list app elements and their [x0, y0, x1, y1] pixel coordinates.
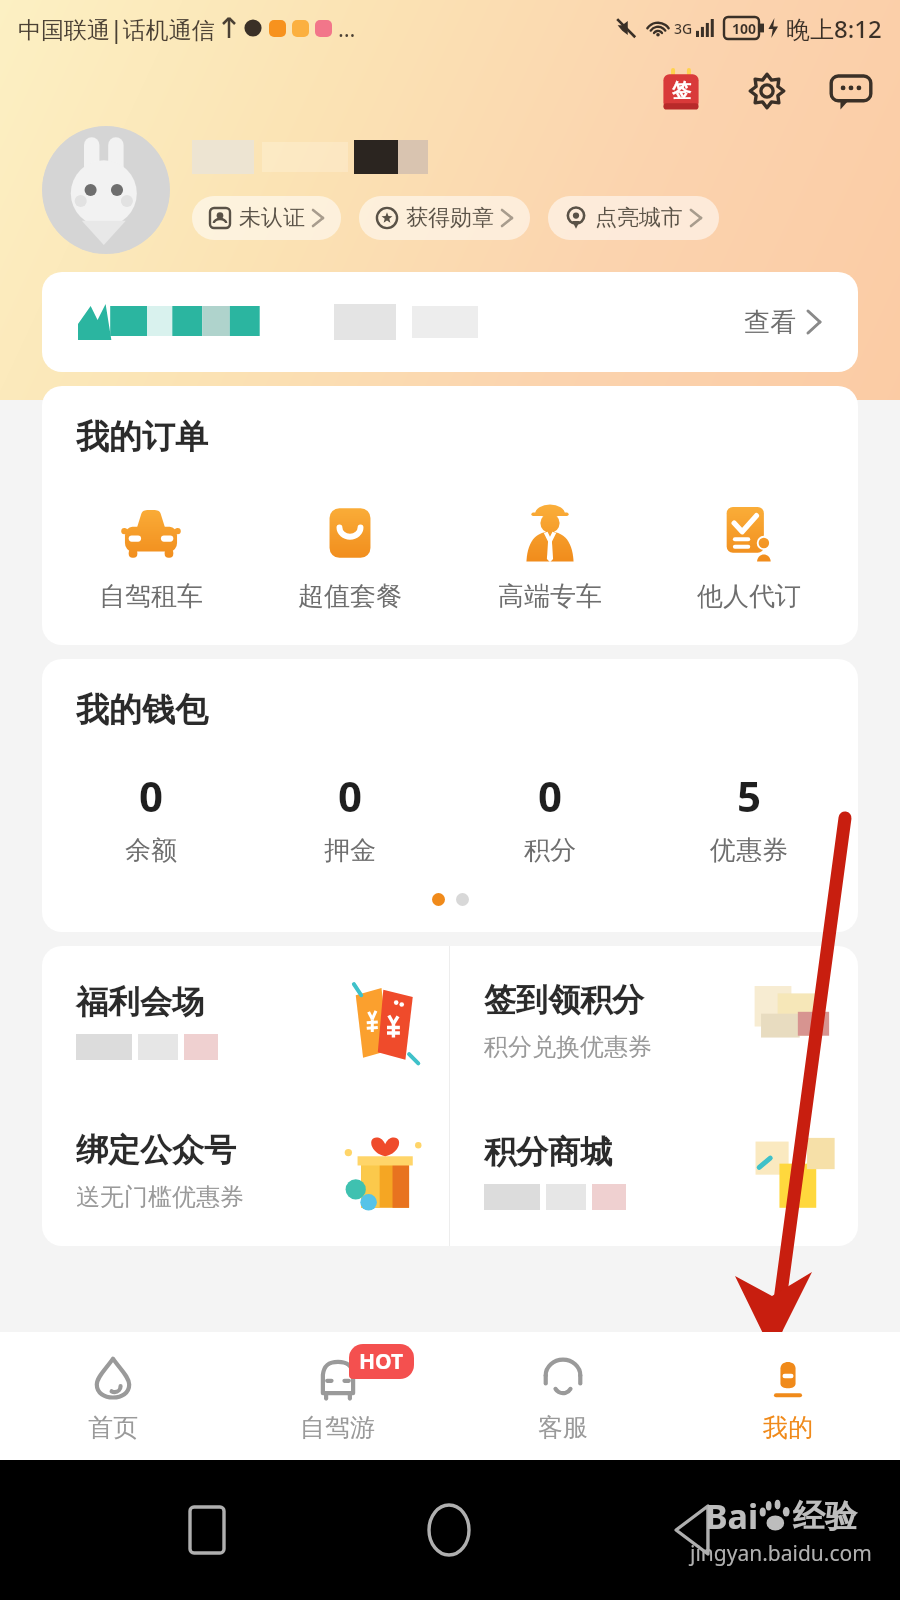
button[interactable]: 签到领积分	[450, 946, 858, 1096]
staticText: 签到领积分	[484, 980, 644, 1020]
staticText: 送无门槛优惠券	[76, 1182, 244, 1212]
button[interactable]: Home	[414, 1495, 484, 1565]
staticText: 经验	[793, 1496, 857, 1536]
staticText: 积分	[524, 834, 576, 867]
button[interactable]: 查看	[42, 272, 858, 372]
button[interactable]: 0	[460, 767, 640, 867]
staticText: 查看	[744, 306, 796, 339]
staticText: 余额	[125, 834, 177, 867]
staticText: 客服	[538, 1412, 588, 1443]
staticText: 自驾租车	[99, 580, 203, 613]
staticText: 晚上8:12	[786, 12, 882, 45]
staticText: 签	[672, 79, 691, 103]
staticText: 积分兑换优惠券	[484, 1032, 652, 1062]
button[interactable]: 头像	[42, 126, 170, 254]
button[interactable]: 0	[260, 767, 440, 867]
staticText: 我的订单	[76, 416, 208, 458]
staticText: 超值套餐	[298, 580, 402, 613]
staticText: 获得勋章	[406, 204, 494, 232]
staticText: 中国联通|话机通信	[18, 13, 215, 44]
button[interactable]: 设置	[742, 66, 792, 116]
staticText: 3G	[674, 19, 693, 38]
staticText: 押金	[324, 834, 376, 867]
staticText: 他人代订	[697, 580, 801, 613]
button[interactable]: 签到	[656, 66, 706, 116]
button[interactable]: 福利会场	[42, 946, 449, 1096]
staticText: 我的钱包	[76, 689, 208, 731]
staticText: 自驾游	[300, 1412, 375, 1443]
staticText: 0	[538, 767, 563, 824]
staticText: 未认证	[239, 204, 305, 232]
staticText: 高端专车	[498, 580, 602, 613]
staticText: …	[338, 13, 356, 43]
staticText: 5	[737, 767, 762, 824]
staticText: 绑定公众号	[76, 1130, 236, 1170]
staticText: 福利会场	[76, 982, 204, 1022]
staticText: 积分商城	[484, 1132, 612, 1172]
button[interactable]: 点亮城市	[548, 196, 719, 240]
button[interactable]: 未认证	[192, 196, 341, 240]
button[interactable]: Recents	[172, 1495, 242, 1565]
button[interactable]: 客服	[450, 1332, 675, 1460]
button[interactable]: 他人代订	[659, 498, 839, 617]
button[interactable]: HOT	[225, 1332, 450, 1460]
staticText: Bai	[705, 1493, 759, 1539]
button[interactable]: 我的	[675, 1332, 900, 1460]
button[interactable]: 获得勋章	[359, 196, 530, 240]
staticText: HOT	[359, 1347, 404, 1376]
staticText: 点亮城市	[595, 204, 683, 232]
staticText: jingyan.baidu.com	[690, 1539, 872, 1568]
button[interactable]: 高端专车	[460, 498, 640, 617]
button[interactable]: 积分商城	[450, 1096, 858, 1246]
staticText: 优惠券	[710, 834, 788, 867]
button[interactable]: 5	[659, 767, 839, 867]
button[interactable]: 超值套餐	[260, 498, 440, 617]
staticText: 0	[139, 767, 164, 824]
button[interactable]: Back	[657, 1495, 727, 1565]
button[interactable]: 首页	[0, 1332, 225, 1460]
button[interactable]: 绑定公众号	[42, 1096, 449, 1246]
staticText: 0	[338, 767, 363, 824]
button[interactable]: 自驾租车	[61, 498, 241, 617]
button[interactable]: 0	[61, 767, 241, 867]
staticText: 我的	[763, 1412, 813, 1443]
button[interactable]: 消息	[826, 66, 876, 116]
staticText: 首页	[88, 1412, 138, 1443]
staticText: 100	[732, 19, 757, 38]
